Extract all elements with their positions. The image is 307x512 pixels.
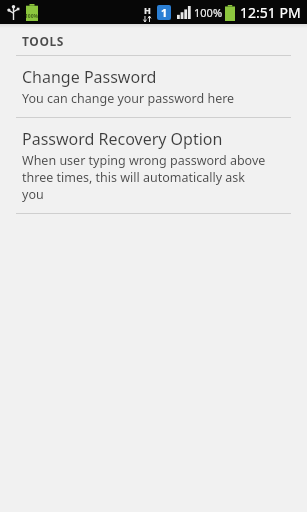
staticText: When user typing wrong password above <box>22 152 266 169</box>
staticText: 100% <box>25 13 39 20</box>
button[interactable]: Password Recovery Option <box>0 118 307 213</box>
staticText: Password Recovery Option <box>22 128 223 150</box>
staticText: Change Password <box>22 66 157 88</box>
staticText: TOOLS <box>22 33 64 49</box>
staticText: You can change your password here <box>22 90 235 107</box>
staticText: you <box>22 186 44 203</box>
staticText: H <box>144 4 151 16</box>
button[interactable]: Change Password <box>0 56 307 117</box>
staticText: three times, this will automatically ask <box>22 169 246 186</box>
staticText: 1 <box>161 5 168 20</box>
staticText: 12:51 PM <box>240 3 301 22</box>
staticText: 100% <box>194 5 223 20</box>
